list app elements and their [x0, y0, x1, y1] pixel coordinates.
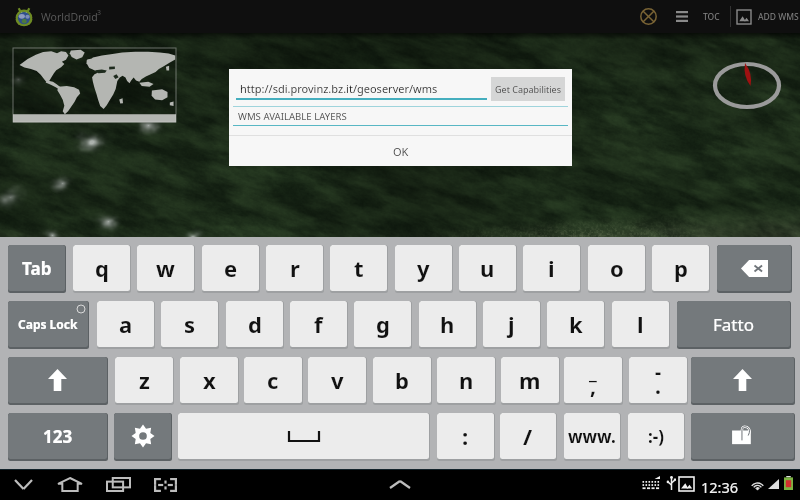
button[interactable]: c [244, 357, 302, 403]
button[interactable]: y [395, 245, 452, 291]
staticText: m [519, 365, 541, 395]
staticText: OK [393, 144, 409, 159]
staticText: z [139, 365, 150, 395]
button[interactable]: Fatto [677, 301, 790, 347]
staticText: g [376, 309, 390, 339]
staticText: d [248, 309, 262, 339]
button[interactable]: g [354, 301, 411, 347]
button[interactable]: w [137, 245, 194, 291]
staticText: :-) [648, 425, 664, 448]
button[interactable]: ADD WMS [735, 0, 800, 33]
button[interactable]: x [180, 357, 238, 403]
button[interactable]: Get Capabilities [491, 77, 565, 101]
staticText: Get Capabilities [495, 83, 561, 95]
staticText: www. [568, 425, 616, 448]
button[interactable]: Screenshot [150, 471, 180, 498]
staticText: WorldDroid [41, 10, 98, 24]
staticText: / [523, 421, 533, 451]
button[interactable]: : [437, 413, 494, 459]
button[interactable]: Backspace [717, 245, 791, 291]
staticText: x [203, 365, 216, 395]
staticText: q [95, 253, 109, 283]
staticText: ADD WMS [758, 11, 799, 23]
staticText: c [267, 365, 279, 395]
staticText: n [459, 365, 474, 395]
staticText: e [224, 253, 238, 283]
button[interactable]: k [547, 301, 604, 347]
staticText: , [590, 372, 596, 401]
button[interactable]: z [115, 357, 173, 403]
staticText: i [548, 253, 555, 283]
staticText: WMS AVAILABLE LAYERS [238, 110, 347, 123]
staticText: v [331, 365, 344, 395]
button[interactable]: e [202, 245, 259, 291]
button[interactable]: Caps Lock [8, 301, 88, 347]
button[interactable]: - [629, 357, 687, 403]
button[interactable]: q [73, 245, 130, 291]
button[interactable]: Shift [8, 357, 107, 403]
button[interactable]: f [290, 301, 347, 347]
button[interactable]: TOC [669, 0, 727, 33]
button[interactable]: Back [8, 471, 38, 498]
staticText: Tab [22, 257, 52, 280]
button[interactable]: t [330, 245, 387, 291]
staticText: Fatto [713, 313, 754, 336]
button[interactable]: l [612, 301, 669, 347]
staticText: o [610, 253, 624, 283]
button[interactable]: OK [229, 136, 572, 166]
staticText: k [569, 309, 583, 339]
staticText: u [480, 253, 495, 283]
staticText: http://sdi.provinz.bz.it/geoserver/wms [240, 81, 438, 96]
button[interactable]: http://sdi.provinz.bz.it/geoserver/wms [236, 74, 487, 100]
button[interactable]: v [308, 357, 366, 403]
staticText: r [290, 253, 300, 283]
button[interactable]: s [161, 301, 218, 347]
staticText: f [314, 309, 323, 339]
button[interactable]: Show notifications [385, 471, 415, 498]
button[interactable]: Attach [691, 413, 794, 459]
button[interactable]: Home [55, 471, 85, 498]
button[interactable]: Shift [691, 357, 794, 403]
button[interactable]: d [226, 301, 283, 347]
button[interactable]: r [266, 245, 323, 291]
button[interactable]: p [652, 245, 709, 291]
button[interactable]: j [483, 301, 540, 347]
staticText: j [508, 309, 515, 339]
button[interactable]: m [501, 357, 559, 403]
staticText: b [395, 365, 409, 395]
staticText: : [462, 421, 469, 451]
button[interactable]: a [97, 301, 154, 347]
button[interactable]: WorldDroid [0, 0, 104, 33]
button[interactable]: WMS AVAILABLE LAYERS [233, 107, 568, 126]
staticText: 123 [43, 425, 73, 448]
button[interactable]: Space [178, 413, 429, 459]
staticText: l [637, 309, 644, 339]
button[interactable]: Locate me [632, 0, 664, 33]
staticText: p [674, 253, 688, 283]
button[interactable]: / [500, 413, 556, 459]
button[interactable]: h [419, 301, 476, 347]
button[interactable]: i [523, 245, 580, 291]
button[interactable]: Tab [8, 245, 65, 291]
button[interactable]: www. [564, 413, 620, 459]
button[interactable]: o [588, 245, 645, 291]
button[interactable]: 123 [8, 413, 107, 459]
button[interactable]: Recent apps [103, 471, 133, 498]
button[interactable]: World overview map [13, 48, 176, 122]
staticText: h [440, 309, 455, 339]
staticText: w [156, 253, 175, 283]
staticText: t [354, 253, 364, 283]
staticText: 3 [97, 8, 102, 18]
button[interactable]: Compass [713, 61, 783, 113]
button[interactable]: _ [564, 357, 622, 403]
staticText: y [417, 253, 430, 283]
staticText: a [119, 309, 133, 339]
staticText: . [655, 372, 661, 401]
button[interactable]: Keyboard settings [114, 413, 171, 459]
button[interactable]: :-) [628, 413, 684, 459]
button[interactable]: b [373, 357, 431, 403]
button[interactable]: u [459, 245, 516, 291]
staticText: TOC [703, 11, 720, 23]
button[interactable]: n [437, 357, 495, 403]
staticText: 12:36 [701, 477, 739, 497]
